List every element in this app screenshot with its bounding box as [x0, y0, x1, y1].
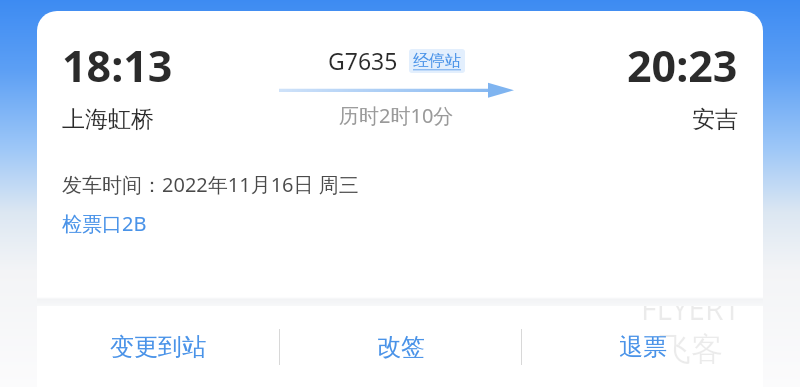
button[interactable]: 经停站: [409, 49, 465, 73]
staticText: 检票口2B: [62, 210, 147, 237]
staticText: G7635: [328, 45, 398, 76]
staticText: 历时2时10分: [339, 102, 454, 129]
button[interactable]: 检票口2B: [62, 210, 147, 237]
staticText: 上海虹桥: [62, 105, 154, 134]
button[interactable]: 变更到站: [37, 306, 279, 387]
staticText: 发车时间：2022年11月16日 周三: [62, 171, 359, 198]
staticText: 退票: [619, 332, 667, 362]
staticText: 改签: [377, 332, 425, 362]
staticText: 变更到站: [110, 332, 206, 362]
staticText: 20:23: [627, 36, 738, 95]
staticText: 飞客: [659, 329, 723, 369]
button[interactable]: 改签: [280, 306, 521, 387]
staticText: 18:13: [62, 36, 173, 95]
staticText: FLYERT: [641, 288, 741, 329]
button[interactable]: 退票: [522, 306, 763, 387]
staticText: 安吉: [692, 105, 738, 134]
staticText: 经停站: [413, 51, 461, 71]
